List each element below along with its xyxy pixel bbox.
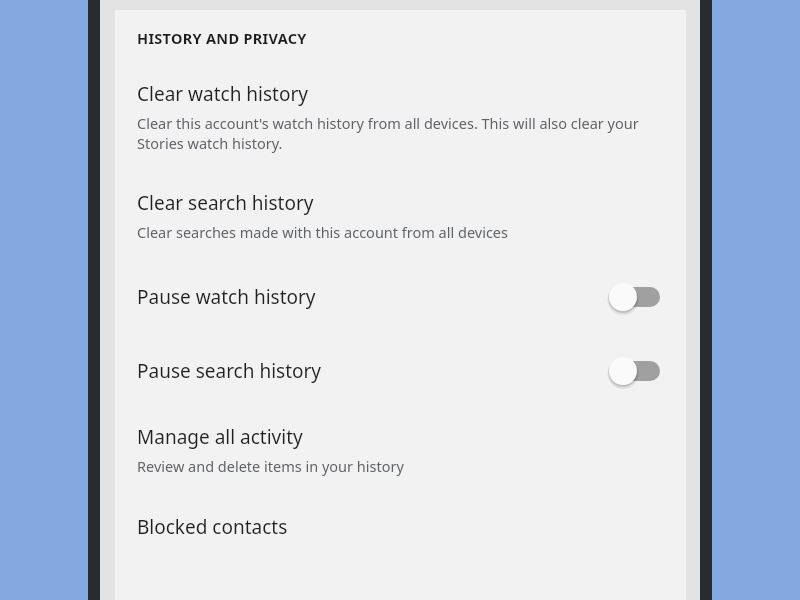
button[interactable]: Pause watch history toggle [608,277,670,317]
staticText: Clear searches made with this account fr… [137,222,508,242]
staticText: Clear watch history [137,81,308,107]
staticText: Clear search history [137,190,314,216]
staticText: Pause watch history [137,284,608,310]
staticText: Clear this account's watch history from … [137,113,664,154]
button[interactable]: Pause search history [115,351,686,391]
button[interactable]: Pause search history toggle [608,351,670,391]
staticText: HISTORY AND PRIVACY [137,28,307,48]
staticText: Review and delete items in your history [137,456,404,476]
staticText: Manage all activity [137,424,303,450]
button[interactable]: Blocked contacts [115,514,686,540]
button[interactable]: Pause watch history [115,277,686,317]
staticText: Blocked contacts [137,514,288,540]
button[interactable]: Clear search history [115,190,686,242]
button[interactable]: Clear watch history [115,81,686,154]
staticText: Pause search history [137,358,608,384]
button[interactable]: Manage all activity [115,424,686,476]
